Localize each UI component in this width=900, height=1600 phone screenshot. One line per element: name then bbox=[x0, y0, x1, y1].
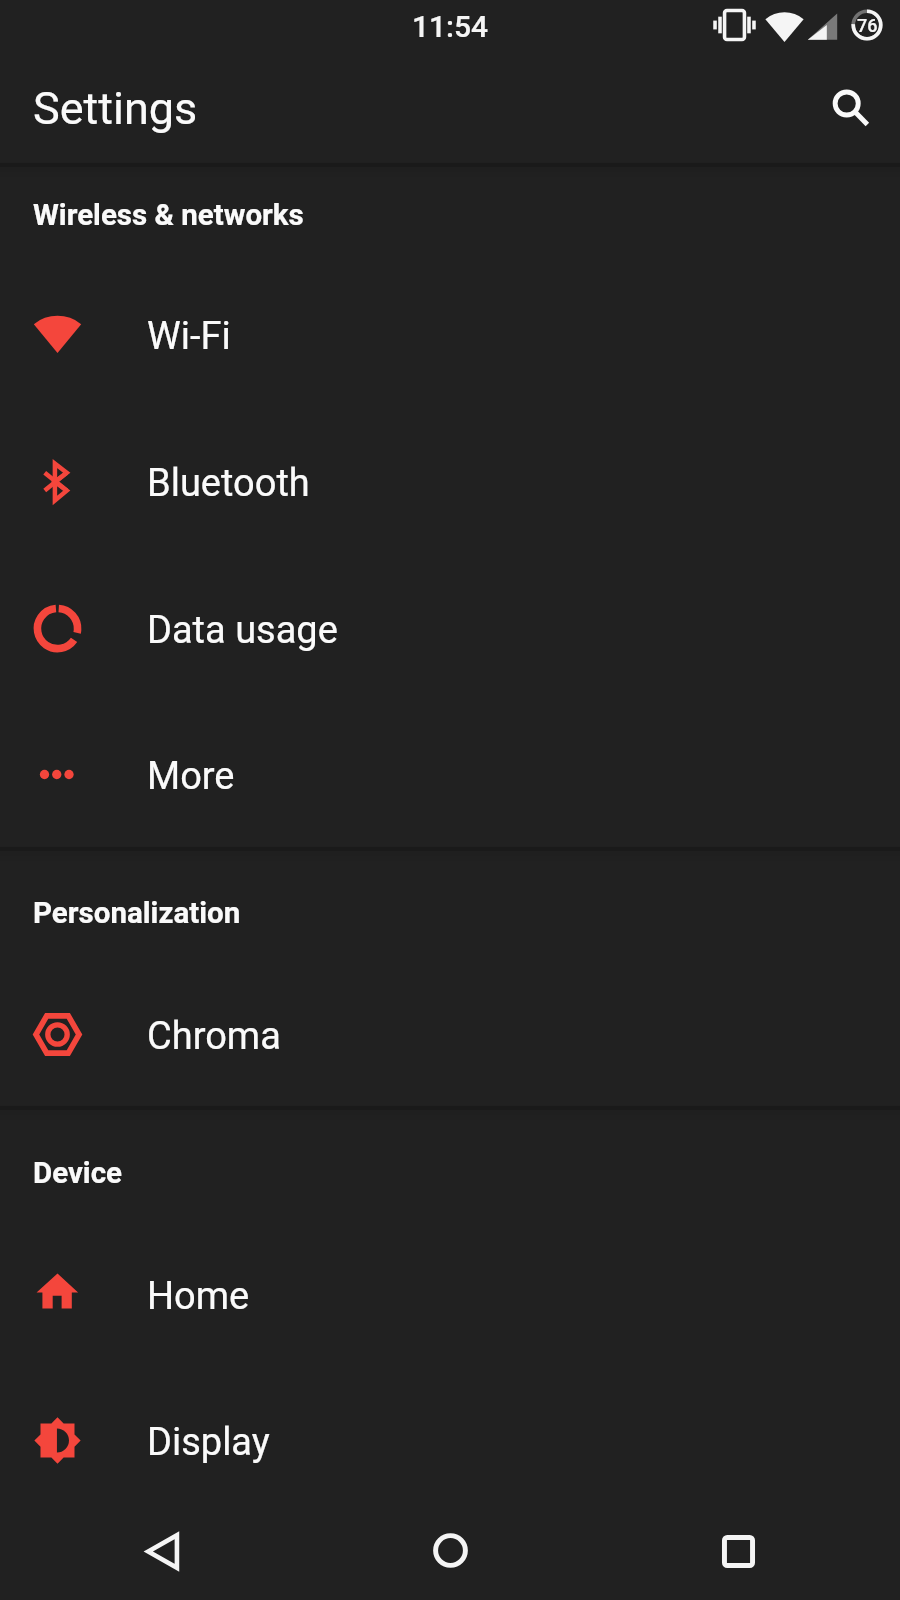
staticText: Display bbox=[147, 1420, 270, 1465]
staticText: 11:54 bbox=[412, 9, 489, 44]
staticText: Wi-Fi bbox=[147, 314, 231, 359]
button[interactable]: Chroma bbox=[0, 963, 900, 1110]
staticText: Chroma bbox=[147, 1014, 281, 1059]
button[interactable]: Wi-Fi bbox=[0, 263, 900, 410]
button[interactable]: Recents bbox=[693, 1506, 783, 1596]
staticText: Personalization bbox=[33, 896, 241, 931]
button[interactable]: Home bbox=[405, 1505, 495, 1595]
staticText: Home bbox=[147, 1274, 250, 1319]
button[interactable]: Search bbox=[808, 66, 892, 150]
button[interactable]: Home bbox=[0, 1223, 900, 1370]
button[interactable]: Bluetooth bbox=[0, 410, 900, 557]
staticText: Bluetooth bbox=[147, 461, 310, 506]
staticText: Device bbox=[33, 1156, 123, 1191]
staticText: Wireless & networks bbox=[33, 198, 304, 233]
button[interactable]: Back bbox=[117, 1506, 207, 1596]
button[interactable]: Data usage bbox=[0, 557, 900, 704]
button[interactable]: More bbox=[0, 703, 900, 850]
staticText: More bbox=[147, 754, 235, 799]
button[interactable]: Display bbox=[0, 1369, 900, 1516]
staticText: 76 bbox=[857, 15, 878, 36]
staticText: Data usage bbox=[147, 608, 338, 653]
staticText: Settings bbox=[33, 82, 198, 135]
